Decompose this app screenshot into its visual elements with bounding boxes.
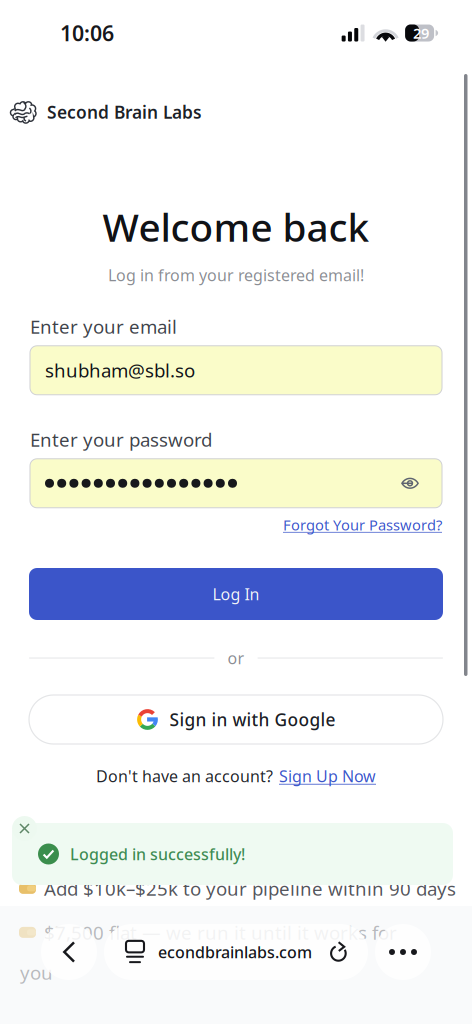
staticText: Log In <box>212 583 259 605</box>
staticText: or <box>227 647 244 669</box>
staticText: Enter your email <box>30 314 177 339</box>
staticText: Don't have an account? <box>96 765 273 787</box>
staticText: Enter your password <box>30 427 212 452</box>
staticText: econdbrainlabs.com <box>158 941 312 963</box>
staticText: Logged in successfully! <box>70 843 245 865</box>
button[interactable]: Back <box>41 924 97 980</box>
staticText: Second Brain Labs <box>47 100 202 123</box>
staticText: you <box>20 960 53 985</box>
button[interactable]: Sign in with Google <box>29 695 443 744</box>
staticText: Sign in with Google <box>169 708 335 731</box>
staticText: Forgot Your Password? <box>283 515 442 534</box>
staticText: $7,500 flat — we run it until it works f… <box>44 920 397 945</box>
button[interactable]: Reader <box>120 932 150 972</box>
staticText: Welcome back <box>102 201 369 252</box>
button[interactable]: Close <box>12 816 37 841</box>
button[interactable]: Forgot Your Password? <box>283 513 442 536</box>
staticText: Sign Up Now <box>279 765 376 787</box>
button[interactable]: Sign Up Now <box>279 765 376 787</box>
button[interactable]: Reload <box>326 932 352 972</box>
button[interactable]: Log In <box>29 568 443 620</box>
staticText: shubham@sbl.so <box>45 358 195 383</box>
staticText: 10:06 <box>60 19 114 47</box>
staticText: Log in from your registered email! <box>108 264 364 285</box>
staticText: Add $10k–$25k to your pipeline within 90… <box>44 876 456 901</box>
button[interactable]: More <box>375 924 431 980</box>
staticText: 29 <box>413 23 429 43</box>
button[interactable]: Show password <box>395 468 425 498</box>
